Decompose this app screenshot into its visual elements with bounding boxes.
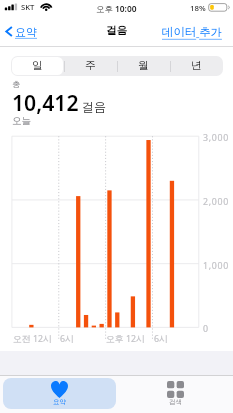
- staticText: 6시: [60, 333, 74, 345]
- staticText: 검색: [169, 398, 182, 406]
- staticText: 오전 12시: [13, 333, 52, 345]
- staticText: 0: [203, 323, 209, 335]
- button[interactable]: 월: [117, 56, 170, 76]
- button[interactable]: 년: [170, 56, 223, 76]
- staticText: 일: [32, 59, 43, 73]
- staticText: 3,000: [203, 132, 229, 144]
- staticText: 년: [191, 59, 202, 73]
- other: 검색: [167, 381, 184, 398]
- staticText: 2,000: [203, 196, 229, 208]
- button[interactable]: 요약: [0, 22, 43, 41]
- staticText: 주: [85, 59, 96, 73]
- button[interactable]: 일: [11, 56, 64, 76]
- staticText: 오후 10:00: [96, 3, 137, 14]
- staticText: 6시: [154, 333, 168, 345]
- button[interactable]: 주: [64, 56, 117, 76]
- button[interactable]: 요약: [3, 378, 116, 409]
- staticText: 오늘: [12, 115, 31, 127]
- staticText: 18%: [190, 3, 206, 14]
- staticText: 걸음: [106, 24, 128, 37]
- staticText: SKT: [21, 2, 35, 12]
- staticText: 걸음: [82, 99, 106, 114]
- staticText: 10,412: [12, 88, 79, 117]
- staticText: 월: [138, 59, 149, 73]
- staticText: 총: [12, 79, 21, 89]
- staticText: 요약: [15, 25, 37, 39]
- other: 요약: [51, 381, 68, 398]
- staticText: 오후 12시: [106, 333, 145, 345]
- staticText: 1,000: [203, 260, 229, 272]
- button[interactable]: 검색: [119, 378, 231, 409]
- button[interactable]: 데이터 추가: [156, 22, 233, 41]
- staticText: 요약: [53, 398, 66, 406]
- staticText: 데이터 추가: [162, 24, 222, 40]
